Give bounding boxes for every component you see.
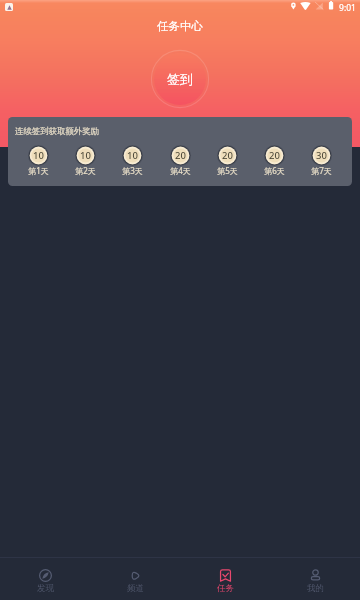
staticText: 第1天 [28,165,49,176]
button[interactable]: 20 [217,145,238,177]
button[interactable]: 频道 [90,558,180,600]
staticText: 频道 [127,583,144,594]
staticText: 30 [316,149,327,162]
button[interactable]: 我的 [270,558,360,600]
staticText: 第7天 [311,165,332,176]
staticText: 20 [222,149,233,162]
staticText: 10 [80,149,91,162]
staticText: 签到 [167,71,193,87]
staticText: 连续签到获取额外奖励 [15,126,99,137]
staticText: 9:01 [339,2,356,14]
staticText: 第5天 [217,165,238,176]
button[interactable]: 20 [170,145,191,177]
staticText: 任务中心 [157,19,203,33]
staticText: 第3天 [122,165,143,176]
button[interactable]: 30 [311,145,332,177]
staticText: 20 [269,149,280,162]
staticText: 任务 [217,583,234,594]
button[interactable]: 20 [264,145,285,177]
button[interactable]: 发现 [0,558,90,600]
staticText: 20 [175,149,186,162]
button[interactable]: 签到 [145,44,215,114]
staticText: 第6天 [264,165,285,176]
staticText: 第2天 [75,165,96,176]
staticText: 发现 [37,583,54,594]
staticText: 10 [33,149,44,162]
staticText: 10 [127,149,138,162]
button[interactable]: 10 [28,145,49,177]
button[interactable]: 10 [122,145,143,177]
button[interactable]: 10 [75,145,96,177]
staticText: 我的 [307,583,324,594]
button[interactable]: 任务 [180,558,270,600]
staticText: 第4天 [170,165,191,176]
